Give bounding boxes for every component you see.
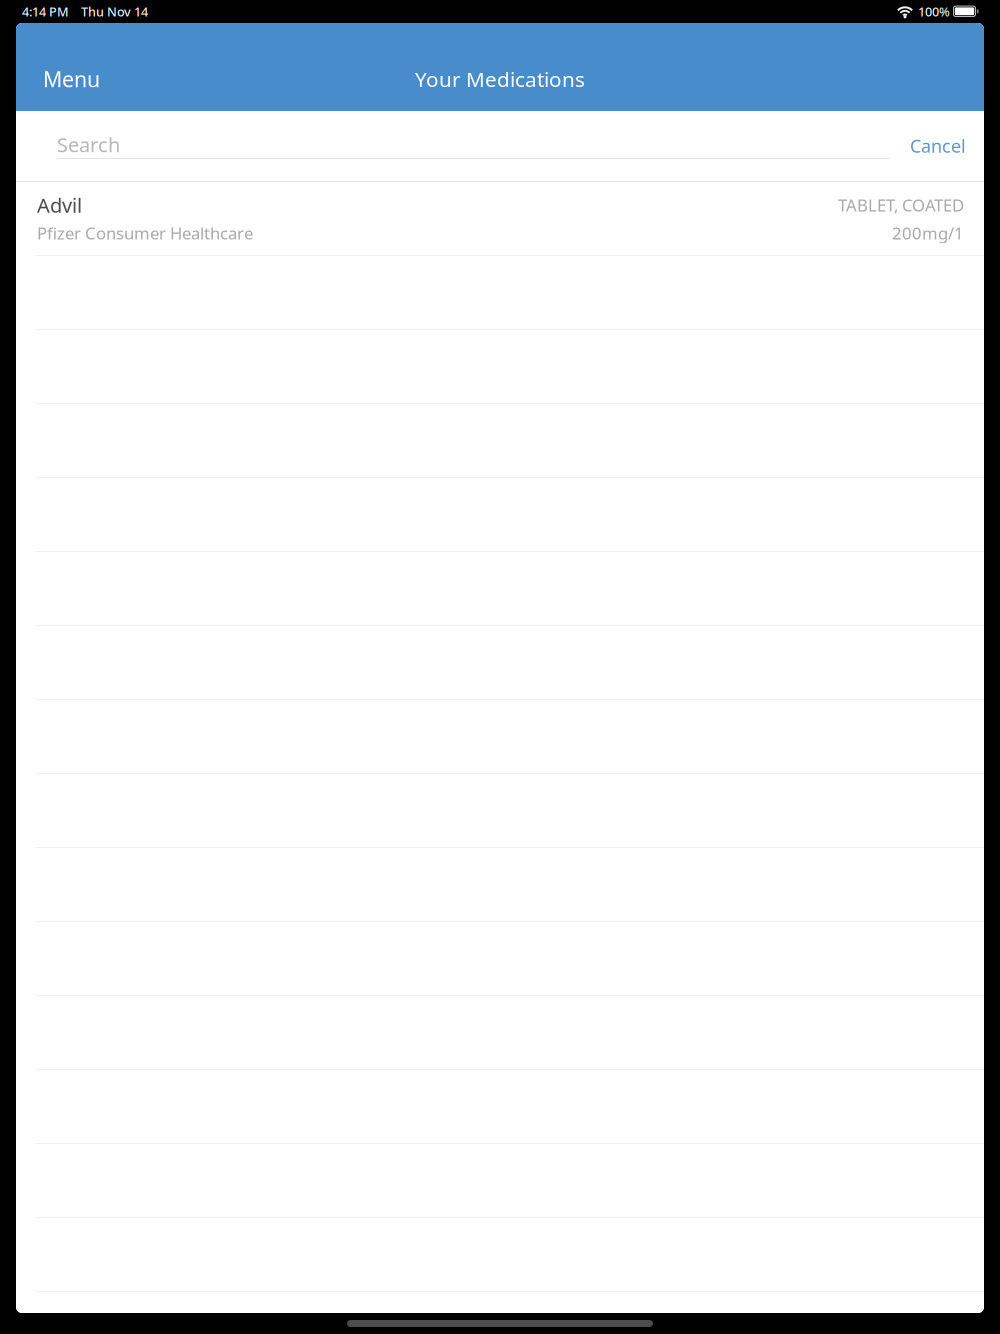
button[interactable]: Advil: [16, 182, 984, 256]
staticText: 4:14 PM: [22, 3, 69, 20]
staticText: Menu: [43, 64, 100, 94]
staticText: Search: [57, 131, 120, 158]
staticText: 100%: [918, 3, 950, 20]
button[interactable]: Cancel: [886, 120, 984, 158]
staticText: Thu Nov 14: [81, 3, 148, 20]
staticText: Pfizer Consumer Healthcare: [37, 222, 253, 244]
staticText: Your Medications: [415, 65, 585, 93]
staticText: Advil: [37, 191, 82, 219]
button[interactable]: Menu: [16, 57, 120, 101]
staticText: 200mg/1: [892, 222, 964, 244]
staticText: Cancel: [910, 133, 966, 158]
staticText: TABLET, COATED: [838, 194, 964, 216]
